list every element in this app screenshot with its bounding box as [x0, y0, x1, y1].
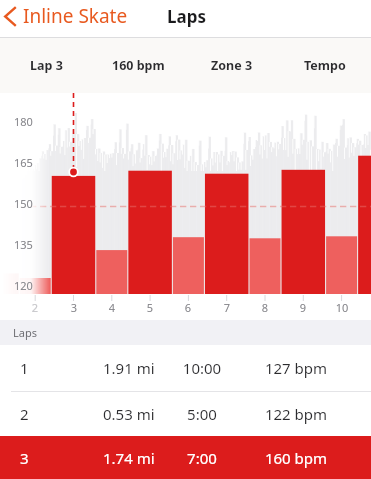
staticText: 2 [25, 300, 45, 315]
staticText: 7 [217, 300, 237, 315]
staticText: 10:00 [177, 358, 227, 378]
staticText: 160 bpm [256, 448, 336, 468]
staticText: Zone 3 [211, 57, 253, 74]
staticText: 1.74 mi [103, 448, 155, 468]
staticText: 8 [255, 300, 275, 315]
button[interactable]: Inline Skate [0, 2, 136, 30]
staticText: 10 [332, 300, 352, 315]
staticText: 5:00 [177, 404, 227, 424]
button[interactable]: 2 [0, 392, 371, 436]
staticText: Tempo [304, 57, 346, 74]
staticText: 160 bpm [112, 57, 165, 74]
button[interactable]: 3 [0, 436, 371, 479]
staticText: 5 [140, 300, 160, 315]
staticText: 120 [14, 278, 36, 293]
staticText: 150 [14, 196, 36, 211]
staticText: 6 [178, 300, 198, 315]
staticText: 4 [102, 300, 122, 315]
staticText: 180 [14, 114, 36, 129]
staticText: 122 bpm [256, 404, 336, 424]
staticText: 3 [64, 300, 84, 315]
staticText: 135 [14, 237, 36, 252]
staticText: Inline Skate [23, 3, 128, 29]
staticText: 3 [20, 448, 29, 468]
button[interactable]: 1 [0, 345, 371, 391]
staticText: 0.53 mi [103, 404, 155, 424]
staticText: Lap 3 [30, 57, 63, 74]
staticText: 9 [293, 300, 313, 315]
staticText: 165 [14, 155, 36, 170]
staticText: 7:00 [177, 448, 227, 468]
staticText: Laps [13, 325, 37, 340]
staticText: 1.91 mi [103, 358, 155, 378]
staticText: 2 [20, 404, 29, 424]
staticText: Laps [167, 5, 206, 28]
staticText: 1 [20, 358, 29, 378]
staticText: 127 bpm [256, 358, 336, 378]
